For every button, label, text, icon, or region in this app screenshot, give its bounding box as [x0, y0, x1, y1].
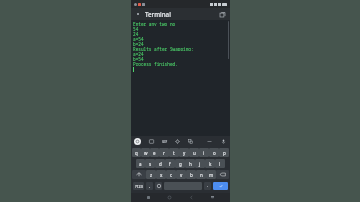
- button[interactable]: r: [159, 148, 169, 157]
- staticText: q: [135, 150, 138, 156]
- staticText: GIF: [162, 140, 168, 144]
- button[interactable]: l: [215, 159, 225, 168]
- button[interactable]: Google Assistant: [134, 138, 141, 145]
- button[interactable]: b: [186, 170, 196, 179]
- button[interactable]: d: [155, 159, 165, 168]
- button[interactable]: k: [205, 159, 215, 168]
- button[interactable]: More options: [206, 138, 213, 145]
- staticText: b: [190, 172, 193, 178]
- button[interactable]: Menu: [135, 11, 141, 17]
- staticText: z: [150, 172, 153, 178]
- button[interactable]: Translate: [187, 138, 194, 145]
- button[interactable]: h: [185, 159, 195, 168]
- staticText: Enter any two no: [133, 21, 176, 26]
- button[interactable]: Recents: [145, 194, 152, 201]
- staticText: b=24: [133, 41, 144, 46]
- button[interactable]: e: [150, 148, 159, 157]
- button[interactable]: z: [146, 170, 156, 179]
- staticText: g: [179, 161, 182, 167]
- staticText: y: [183, 150, 186, 156]
- staticText: i: [203, 150, 205, 156]
- staticText: u: [193, 150, 196, 156]
- staticText: .: [207, 183, 209, 189]
- staticText: t: [173, 150, 175, 156]
- button[interactable]: Emoji: [148, 138, 155, 145]
- staticText: v: [180, 172, 183, 178]
- staticText: Process finished.: [133, 61, 178, 66]
- button[interactable]: GIF: [161, 138, 168, 145]
- staticText: a=54: [133, 36, 144, 41]
- staticText: c: [170, 172, 173, 178]
- staticText: 24: [133, 31, 139, 36]
- button[interactable]: p: [219, 148, 229, 157]
- button[interactable]: j: [195, 159, 205, 168]
- staticText: p: [223, 150, 226, 156]
- button[interactable]: .: [204, 182, 211, 190]
- button[interactable]: Settings: [174, 138, 181, 145]
- staticText: 54: [133, 26, 139, 31]
- button[interactable]: Enter: [213, 182, 228, 190]
- button[interactable]: Shift: [132, 170, 146, 179]
- button[interactable]: Emoji: [155, 182, 162, 190]
- button[interactable]: Back: [188, 194, 195, 201]
- staticText: Terminal: [145, 10, 171, 18]
- staticText: n: [200, 172, 203, 178]
- staticText: e: [153, 150, 156, 156]
- button[interactable]: y: [179, 148, 189, 157]
- staticText: h: [189, 161, 192, 167]
- button[interactable]: c: [166, 170, 176, 179]
- staticText: j: [199, 161, 201, 167]
- staticText: a: [139, 161, 142, 167]
- button[interactable]: ,: [146, 182, 153, 190]
- staticText: Results after Swapping:: [133, 46, 194, 51]
- button[interactable]: g: [175, 159, 185, 168]
- staticText: d: [159, 161, 162, 167]
- button[interactable]: m: [206, 170, 216, 179]
- button[interactable]: Home: [166, 194, 173, 201]
- button[interactable]: x: [156, 170, 166, 179]
- button[interactable]: s: [145, 159, 155, 168]
- staticText: x: [160, 172, 163, 178]
- button[interactable]: u: [189, 148, 199, 157]
- button[interactable]: i: [199, 148, 209, 157]
- button[interactable]: n: [196, 170, 206, 179]
- button[interactable]: Voice input: [220, 138, 227, 145]
- staticText: b=54: [133, 56, 144, 61]
- button[interactable]: v: [176, 170, 186, 179]
- staticText: ?123: [135, 184, 143, 189]
- staticText: s: [149, 161, 152, 167]
- staticText: l: [219, 161, 221, 167]
- staticText: f: [169, 161, 171, 167]
- button[interactable]: Backspace: [216, 170, 229, 179]
- staticText: a=24: [133, 51, 144, 56]
- button[interactable]: a: [136, 159, 145, 168]
- staticText: ,: [149, 183, 151, 189]
- button[interactable]: ?123: [133, 182, 144, 190]
- staticText: m: [209, 172, 214, 178]
- button[interactable]: f: [165, 159, 175, 168]
- staticText: o: [213, 150, 216, 156]
- button[interactable]: Tabs: [218, 10, 226, 18]
- button[interactable]: q: [132, 148, 141, 157]
- button[interactable]: t: [169, 148, 179, 157]
- staticText: k: [209, 161, 212, 167]
- button[interactable]: w: [141, 148, 150, 157]
- staticText: w: [144, 150, 148, 156]
- staticText: r: [163, 150, 165, 156]
- button[interactable]: o: [209, 148, 219, 157]
- button[interactable]: Hide keyboard: [209, 194, 216, 201]
